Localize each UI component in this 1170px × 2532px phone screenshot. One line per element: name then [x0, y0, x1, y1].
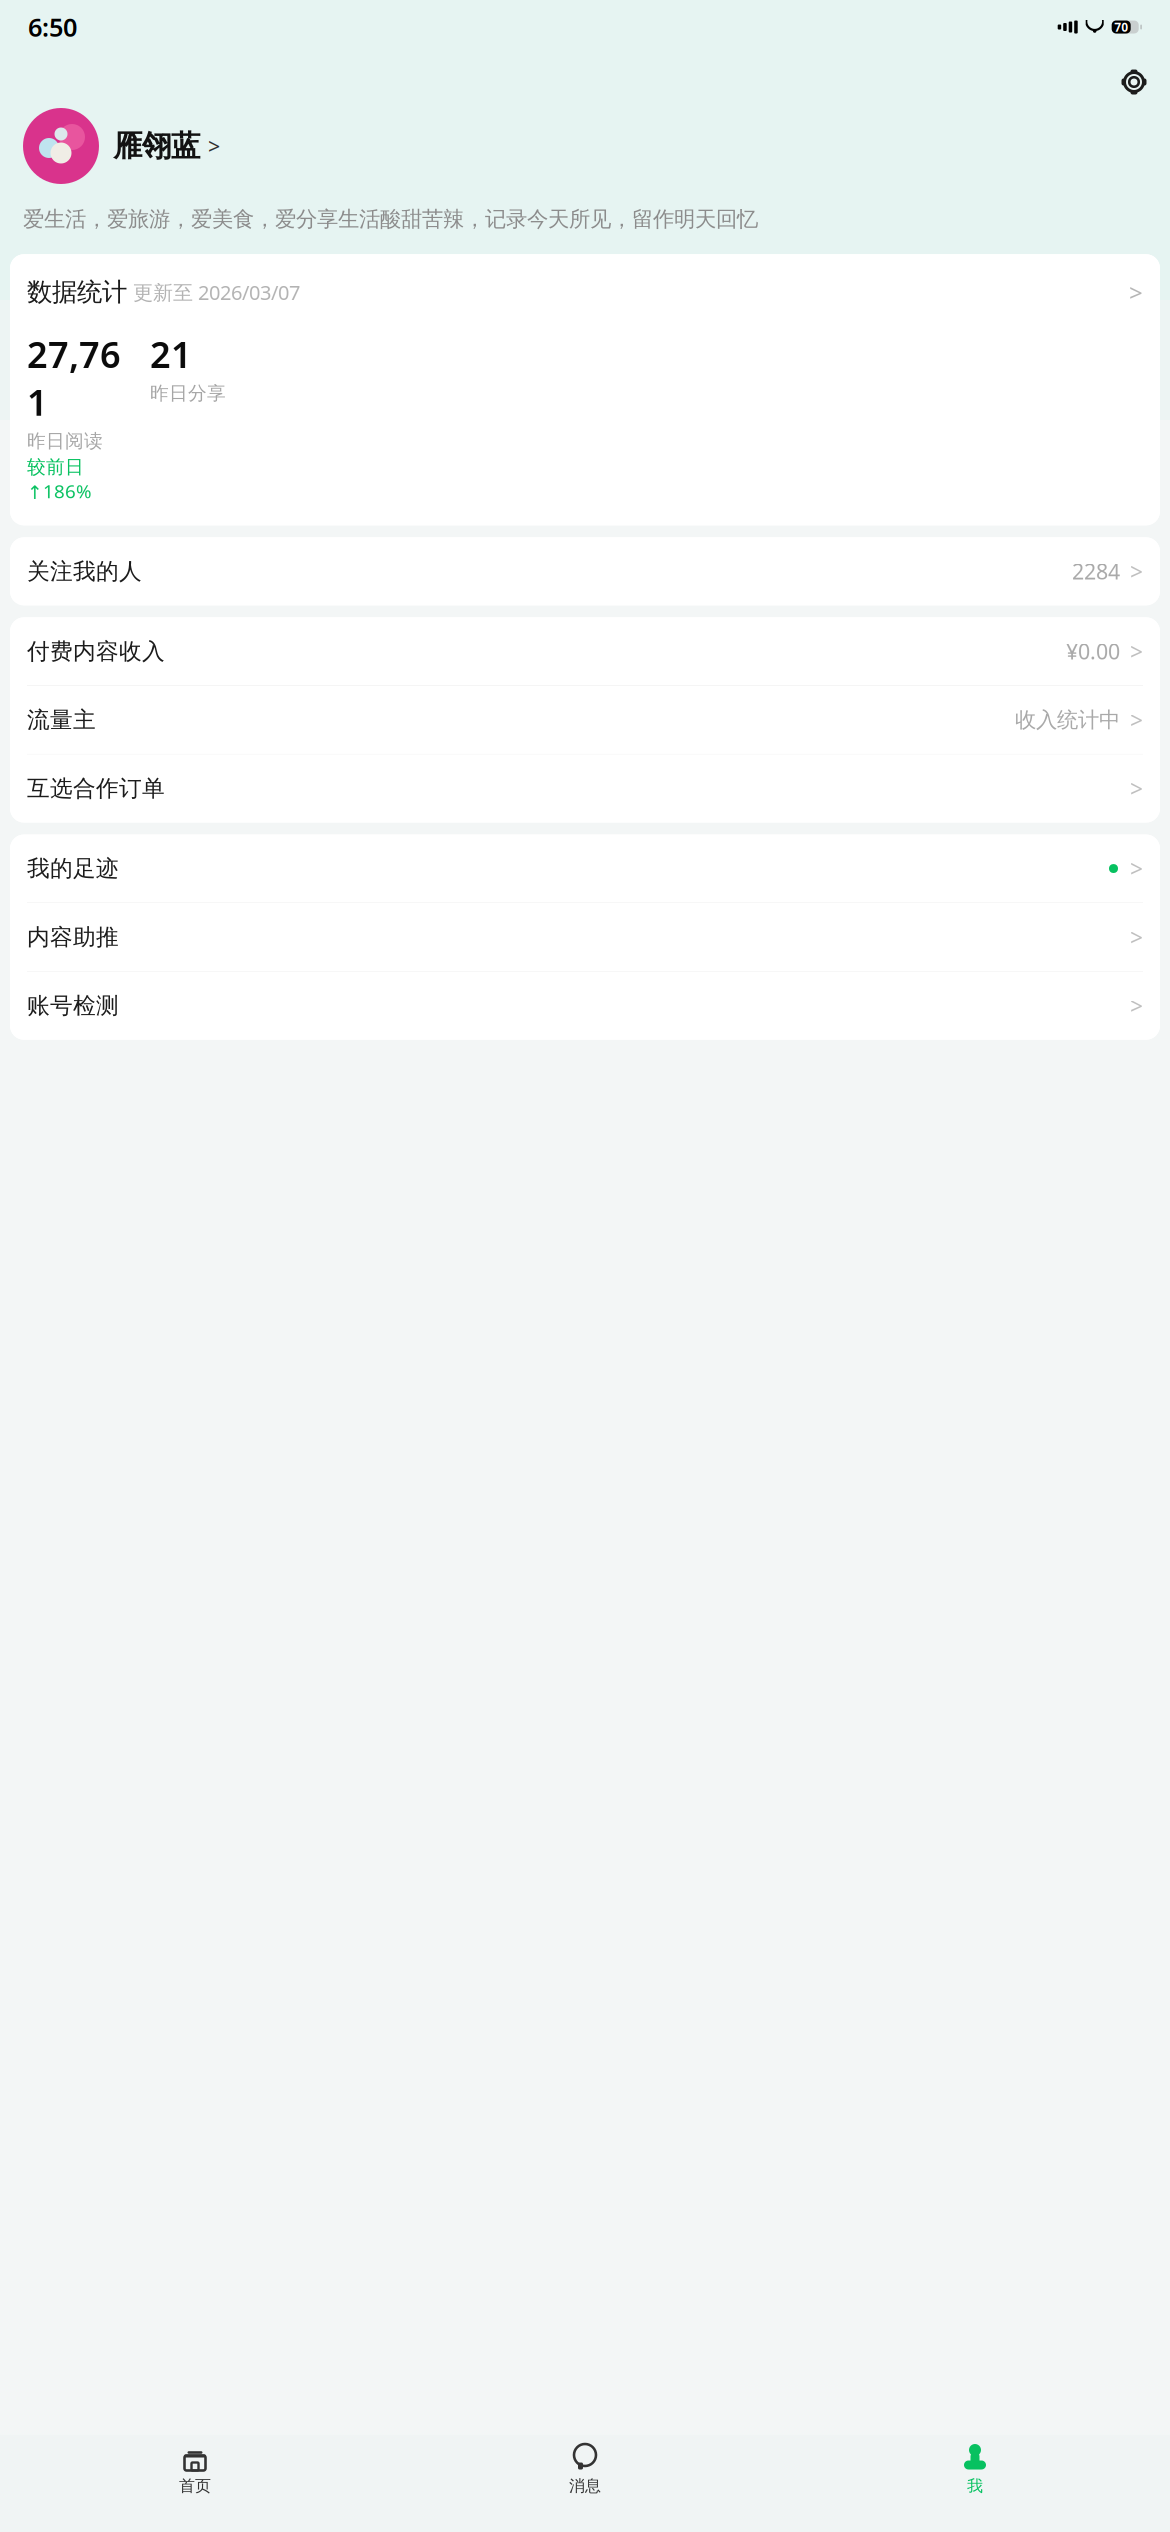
staticText: >	[1130, 773, 1143, 804]
staticText: 21	[150, 330, 192, 378]
button[interactable]: Settings	[1112, 60, 1156, 104]
staticText: 昨日分享	[150, 382, 226, 405]
staticText: 爱生活，爱旅游，爱美食，爱分享生活酸甜苦辣，记录今天所见，留作明天回忆	[23, 206, 758, 232]
button[interactable]: 我	[780, 2435, 1170, 2496]
staticText: >	[1130, 705, 1143, 735]
button[interactable]: 关注我的人	[10, 537, 1160, 605]
staticText: 雁翎蓝	[113, 128, 200, 164]
staticText: 我的足迹	[27, 855, 119, 882]
staticText: 付费内容收入	[27, 637, 165, 665]
button[interactable]: 首页	[0, 2435, 390, 2496]
staticText: 收入统计中	[1015, 707, 1120, 733]
staticText: 更新至 2026/03/07	[127, 279, 300, 305]
staticText: 数据统计	[27, 277, 127, 308]
staticText: 账号检测	[27, 992, 119, 1020]
button[interactable]: 我的足迹	[10, 834, 1160, 902]
staticText: >	[1130, 636, 1143, 666]
button[interactable]: 雁翎蓝	[0, 104, 1170, 184]
staticText: >	[1130, 922, 1143, 952]
staticText: 6:50	[28, 10, 77, 44]
staticText: 昨日阅读	[27, 430, 103, 453]
staticText: >	[208, 132, 220, 160]
staticText: 70	[1114, 19, 1128, 35]
button[interactable]: 流量主	[10, 686, 1160, 754]
button[interactable]: 消息	[390, 2435, 780, 2496]
staticText: >	[1129, 276, 1143, 308]
staticText: 首页	[179, 2476, 211, 2496]
staticText: 2284	[1072, 557, 1120, 585]
staticText: >	[1130, 556, 1143, 586]
staticText: 流量主	[27, 706, 96, 734]
button[interactable]: 付费内容收入	[10, 617, 1160, 685]
staticText: 互选合作订单	[27, 775, 165, 802]
staticText: 较前日↑186%	[27, 456, 92, 503]
staticText: 27,761	[27, 330, 121, 426]
button[interactable]: 互选合作订单	[10, 754, 1160, 822]
button[interactable]: 内容助推	[10, 903, 1160, 971]
staticText: 内容助推	[27, 923, 119, 951]
staticText: ¥0.00	[1066, 637, 1120, 665]
staticText: 关注我的人	[27, 557, 142, 585]
button[interactable]: 账号检测	[10, 972, 1160, 1040]
staticText: >	[1130, 991, 1143, 1021]
staticText: 我	[967, 2476, 983, 2496]
staticText: >	[1130, 853, 1143, 884]
button[interactable]: 数据统计	[10, 254, 1160, 525]
staticText: 消息	[569, 2476, 601, 2496]
